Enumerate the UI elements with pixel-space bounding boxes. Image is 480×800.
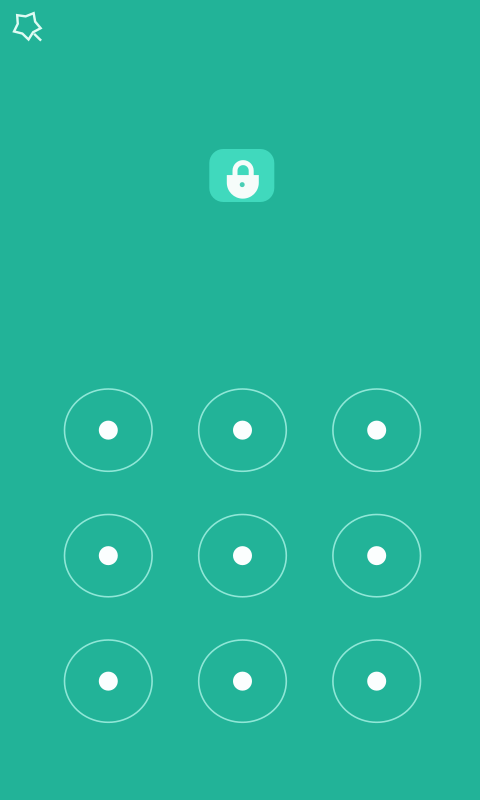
button[interactable]: Pattern dot 5 [199, 514, 286, 597]
button[interactable]: Pattern dot 2 [199, 389, 286, 471]
button[interactable]: Pattern dot 7 [64, 640, 152, 722]
button[interactable]: Pattern dot 3 [333, 389, 420, 471]
button[interactable]: Pattern dot 9 [333, 640, 420, 722]
button[interactable]: Pattern dot 1 [64, 389, 152, 471]
button[interactable]: Magic wand [0, 1, 44, 45]
button[interactable]: Pattern dot 8 [199, 640, 286, 722]
button[interactable]: Pattern dot 6 [333, 514, 420, 597]
button[interactable]: Pattern dot 4 [64, 514, 152, 597]
